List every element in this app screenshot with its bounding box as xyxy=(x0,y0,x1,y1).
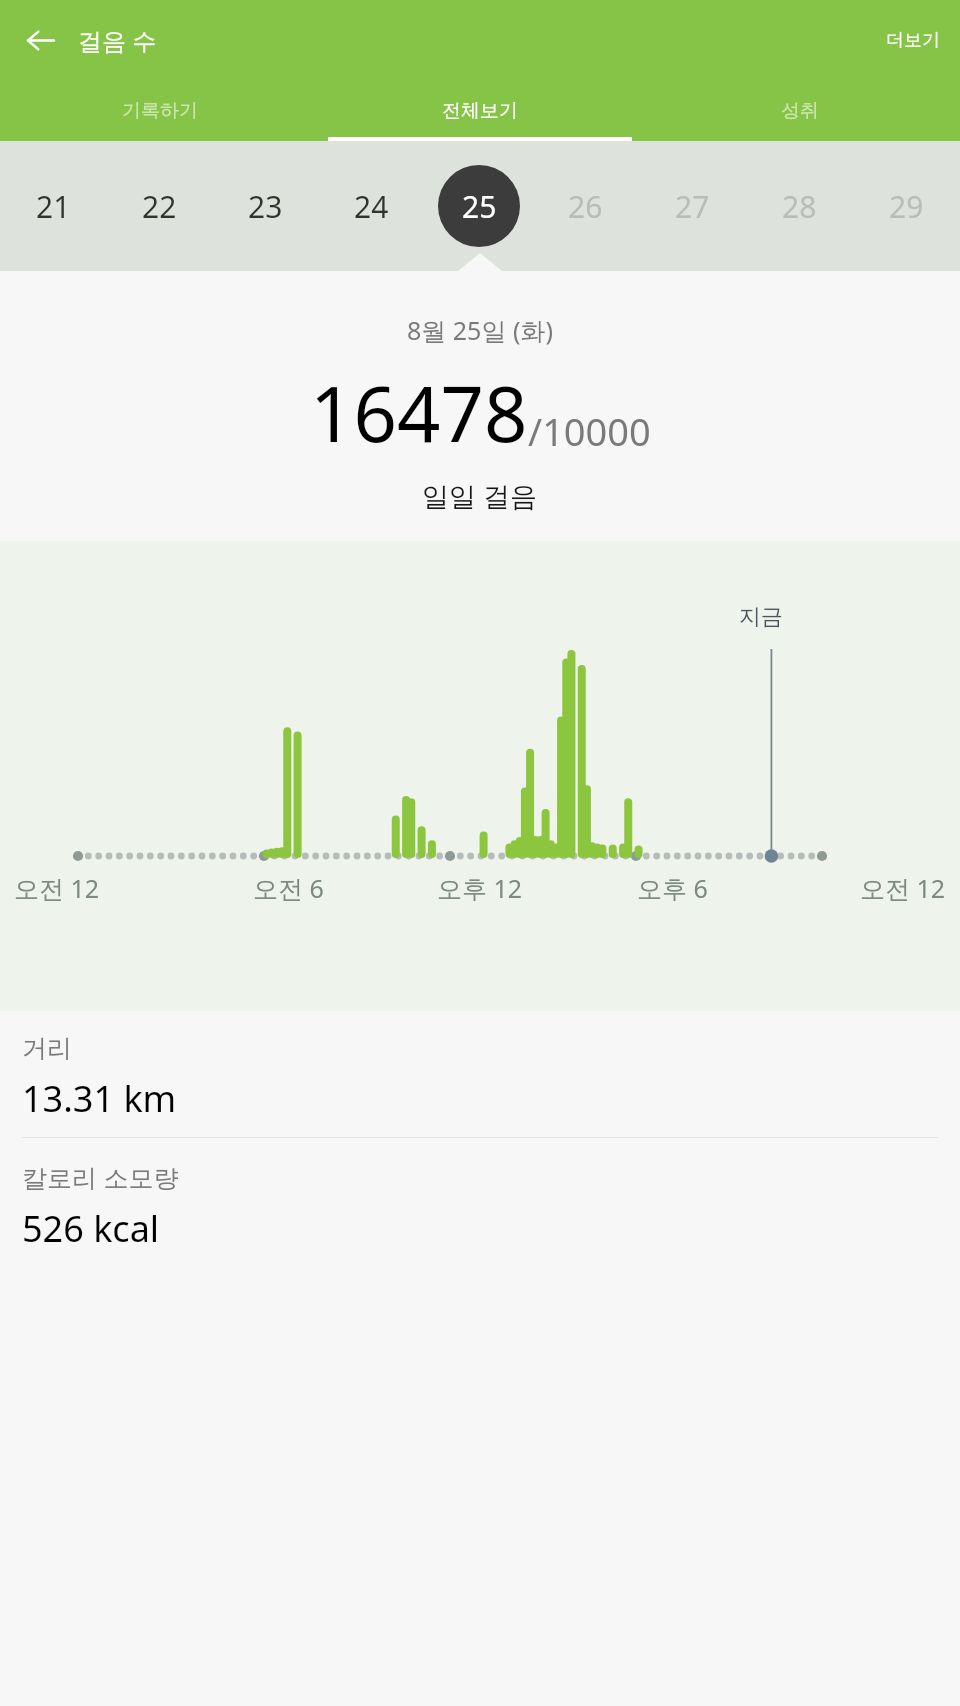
staticText: 13.31 km xyxy=(22,1074,177,1123)
button[interactable]: 22 xyxy=(106,141,212,271)
staticText: 526 kcal xyxy=(22,1204,160,1253)
button[interactable]: Back xyxy=(14,14,66,66)
staticText: 기록하기 xyxy=(122,99,198,123)
button[interactable]: 거리 xyxy=(0,1011,960,1137)
button[interactable]: 전체보기 xyxy=(320,80,640,141)
staticText: 오후 12 xyxy=(437,871,523,905)
staticText: 전체보기 xyxy=(442,99,518,123)
staticText: 8월 25일 (화) xyxy=(407,313,553,347)
staticText: 오전 12 xyxy=(14,871,100,905)
staticText: 21 xyxy=(36,186,71,227)
button[interactable]: 더보기 xyxy=(866,17,960,64)
button[interactable]: 28 xyxy=(746,141,853,271)
staticText: 칼로리 소모량 xyxy=(22,1160,179,1194)
staticText: 오전 12 xyxy=(860,871,946,905)
button[interactable]: 24 xyxy=(318,141,425,271)
button[interactable]: 기록하기 xyxy=(0,80,320,141)
button[interactable]: 성취 xyxy=(640,80,960,141)
staticText: 22 xyxy=(142,186,177,227)
staticText: 24 xyxy=(354,186,389,227)
button[interactable]: 21 xyxy=(0,141,106,271)
staticText: 더보기 xyxy=(886,29,940,52)
staticText: 지금 xyxy=(739,603,783,631)
staticText: /10000 xyxy=(528,405,651,457)
button[interactable]: 29 xyxy=(853,141,960,271)
staticText: 28 xyxy=(782,186,817,227)
button[interactable]: 27 xyxy=(639,141,746,271)
button[interactable]: 25 xyxy=(425,141,532,271)
staticText: 25 xyxy=(462,186,497,227)
staticText: 29 xyxy=(889,186,924,227)
staticText: 26 xyxy=(568,186,603,227)
button[interactable]: 26 xyxy=(532,141,639,271)
staticText: 일일 걸음 xyxy=(422,477,538,514)
staticText: 오후 6 xyxy=(637,871,708,905)
staticText: 거리 xyxy=(22,1033,72,1064)
staticText: 걸음 수 xyxy=(78,24,157,57)
staticText: 23 xyxy=(248,186,283,227)
button[interactable]: 23 xyxy=(212,141,318,271)
staticText: 성취 xyxy=(781,99,819,123)
staticText: 오전 6 xyxy=(253,871,324,905)
staticText: 27 xyxy=(675,186,710,227)
staticText: 16478 xyxy=(310,361,528,465)
button[interactable]: 칼로리 소모량 xyxy=(0,1138,960,1264)
